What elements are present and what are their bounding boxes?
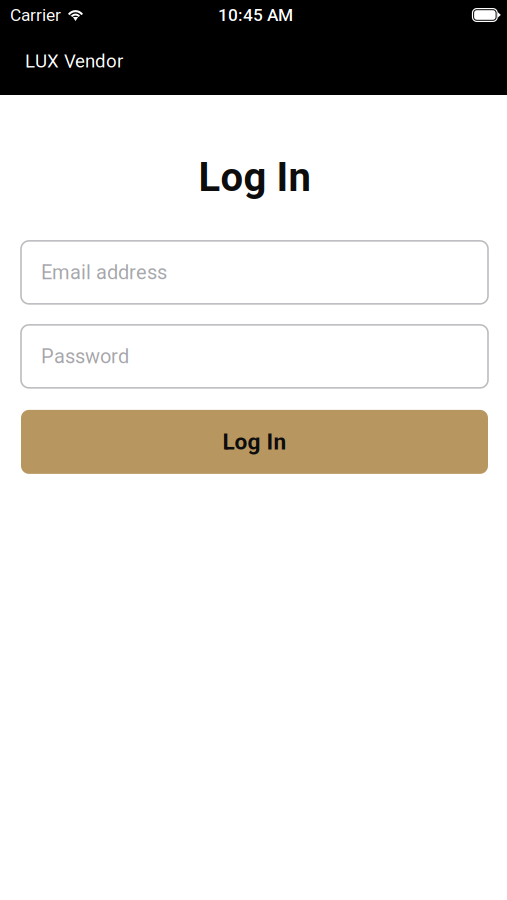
staticText: 10:45 AM	[218, 5, 293, 25]
staticText: Email address	[41, 261, 167, 284]
staticText: LUX Vendor	[25, 50, 123, 72]
staticText: Carrier	[10, 5, 61, 25]
staticText: Password	[41, 345, 129, 368]
staticText: Log In	[198, 154, 310, 201]
button[interactable]: Email address	[21, 241, 488, 304]
button[interactable]: Log In	[21, 410, 488, 474]
button[interactable]: Password	[21, 325, 488, 388]
staticText: Log In	[222, 429, 286, 455]
